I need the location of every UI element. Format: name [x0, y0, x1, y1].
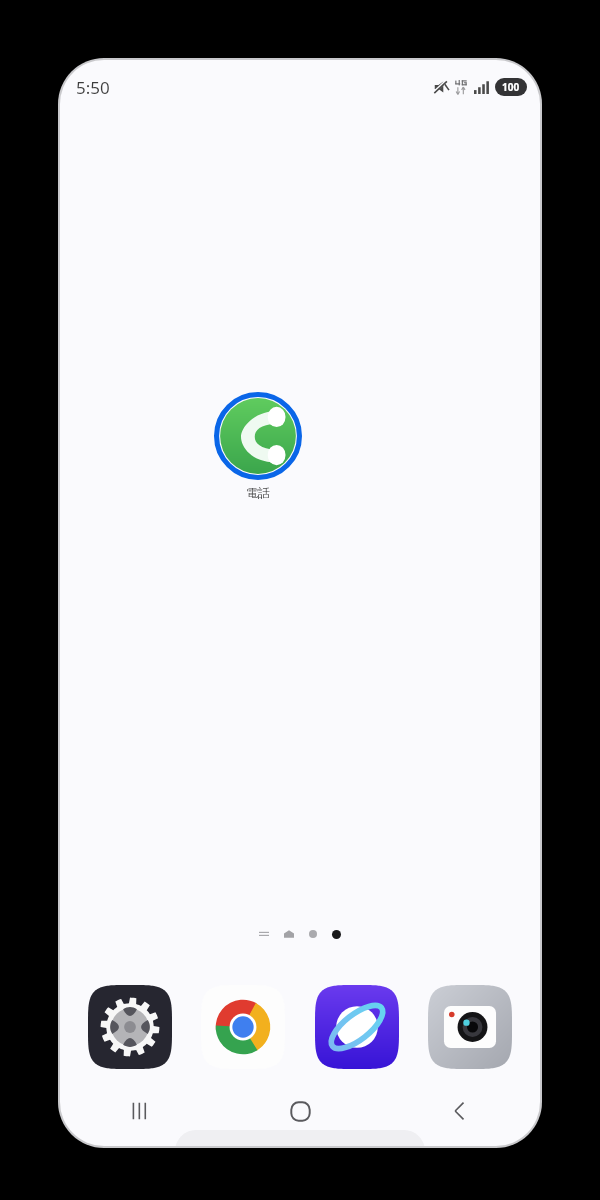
button[interactable]: Back [380, 1083, 540, 1139]
button[interactable]: Chrome [199, 983, 287, 1071]
staticText: 5:50 [76, 76, 110, 99]
button[interactable]: Camera [426, 983, 514, 1071]
staticText: 100 [502, 80, 520, 94]
button[interactable]: Recents [60, 1083, 220, 1139]
button[interactable]: Home [220, 1083, 380, 1139]
button[interactable]: 電話 [199, 392, 317, 500]
staticText: 電話 [246, 485, 270, 500]
button[interactable]: Samsung Internet [313, 983, 401, 1071]
button[interactable]: Settings [86, 983, 174, 1071]
